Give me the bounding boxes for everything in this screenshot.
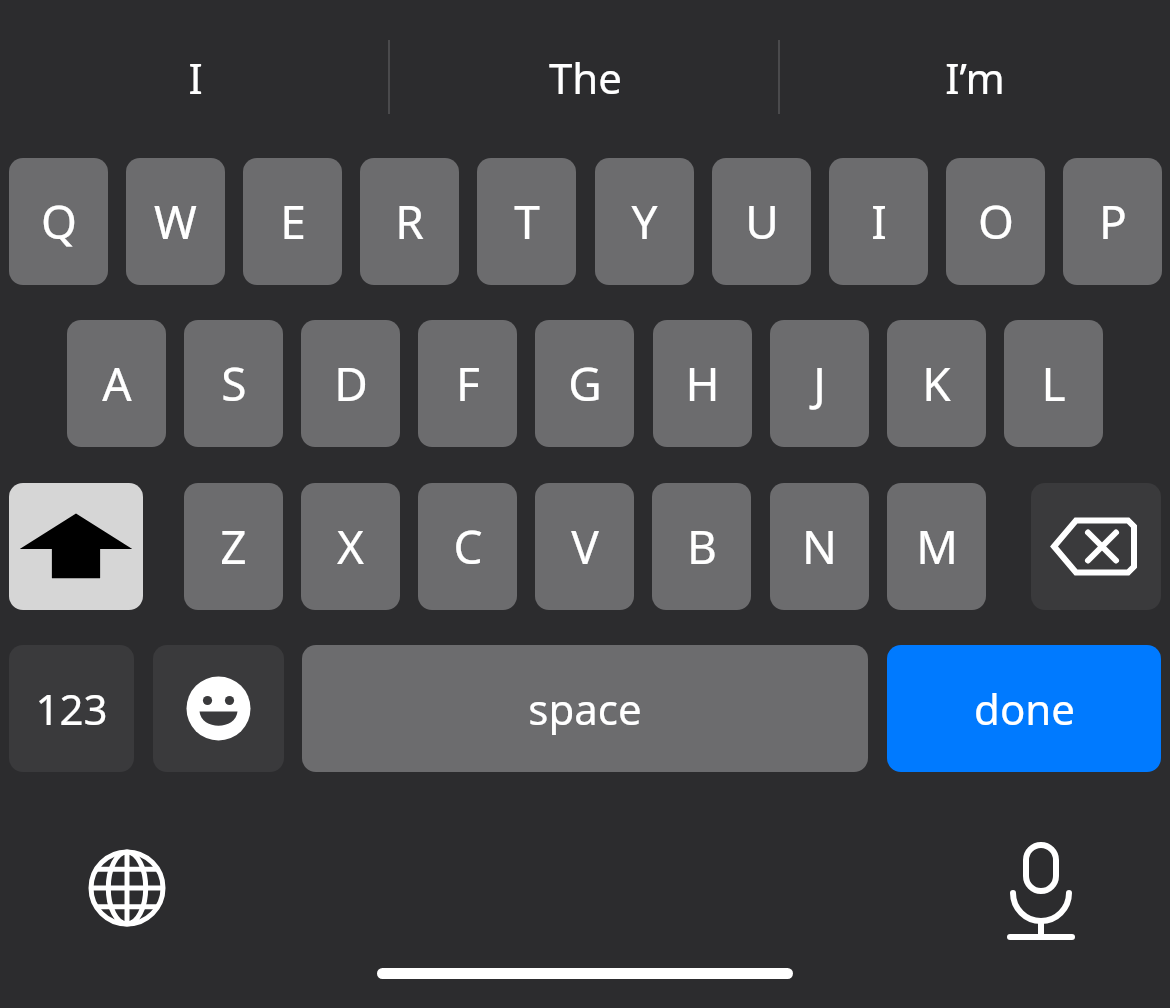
staticText: space bbox=[528, 680, 642, 737]
staticText: A bbox=[102, 352, 132, 415]
button[interactable]: I bbox=[829, 158, 928, 285]
button[interactable]: N bbox=[770, 483, 869, 610]
button[interactable]: M bbox=[887, 483, 986, 610]
button[interactable]: I’m bbox=[815, 22, 1135, 132]
staticText: N bbox=[802, 515, 837, 578]
button[interactable]: Shift bbox=[9, 483, 143, 610]
button[interactable]: The bbox=[425, 22, 745, 132]
button[interactable]: Change keyboard bbox=[72, 833, 182, 943]
button[interactable]: O bbox=[946, 158, 1045, 285]
button[interactable]: T bbox=[477, 158, 576, 285]
button[interactable]: D bbox=[301, 320, 400, 447]
staticText: Q bbox=[41, 190, 77, 253]
staticText: D bbox=[334, 352, 368, 415]
button[interactable]: W bbox=[126, 158, 225, 285]
staticText: K bbox=[922, 352, 951, 415]
staticText: I bbox=[871, 190, 887, 253]
button[interactable]: Q bbox=[9, 158, 108, 285]
staticText: P bbox=[1099, 190, 1127, 253]
staticText: F bbox=[456, 352, 480, 415]
button[interactable]: V bbox=[535, 483, 634, 610]
button[interactable]: Backspace bbox=[1031, 483, 1161, 610]
staticText: E bbox=[280, 190, 306, 253]
staticText: 123 bbox=[35, 680, 108, 737]
button[interactable]: space bbox=[302, 645, 868, 772]
staticText: G bbox=[568, 352, 602, 415]
button[interactable]: A bbox=[67, 320, 166, 447]
button[interactable]: H bbox=[653, 320, 752, 447]
staticText: W bbox=[154, 190, 197, 253]
staticText: T bbox=[514, 190, 540, 253]
button[interactable]: 123 bbox=[9, 645, 134, 772]
button[interactable]: F bbox=[418, 320, 517, 447]
staticText: I’m bbox=[945, 49, 1005, 106]
staticText: M bbox=[916, 515, 958, 578]
button[interactable]: S bbox=[184, 320, 283, 447]
staticText: U bbox=[745, 190, 779, 253]
staticText: L bbox=[1041, 352, 1066, 415]
staticText: B bbox=[687, 515, 717, 578]
button[interactable]: C bbox=[418, 483, 517, 610]
button[interactable]: Y bbox=[595, 158, 694, 285]
staticText: H bbox=[685, 352, 720, 415]
staticText: X bbox=[337, 515, 364, 578]
button[interactable]: U bbox=[712, 158, 811, 285]
button[interactable]: E bbox=[243, 158, 342, 285]
button[interactable]: Z bbox=[184, 483, 283, 610]
button[interactable]: Dictation bbox=[986, 830, 1096, 940]
button[interactable]: R bbox=[360, 158, 459, 285]
button[interactable]: L bbox=[1004, 320, 1103, 447]
staticText: O bbox=[978, 190, 1014, 253]
staticText: I bbox=[188, 49, 203, 106]
button[interactable]: K bbox=[887, 320, 986, 447]
staticText: Z bbox=[220, 515, 247, 578]
button[interactable]: Emoji bbox=[153, 645, 284, 772]
button[interactable]: J bbox=[770, 320, 869, 447]
staticText: C bbox=[453, 515, 483, 578]
button[interactable]: done bbox=[887, 645, 1161, 772]
button[interactable]: P bbox=[1063, 158, 1162, 285]
staticText: V bbox=[571, 515, 599, 578]
staticText: Y bbox=[631, 190, 658, 253]
staticText: S bbox=[221, 352, 247, 415]
staticText: J bbox=[813, 352, 826, 415]
button[interactable]: B bbox=[652, 483, 751, 610]
staticText: done bbox=[974, 680, 1075, 737]
staticText: R bbox=[395, 190, 424, 253]
button[interactable]: G bbox=[535, 320, 634, 447]
staticText: The bbox=[549, 49, 622, 106]
button[interactable]: X bbox=[301, 483, 400, 610]
button[interactable]: I bbox=[35, 22, 355, 132]
